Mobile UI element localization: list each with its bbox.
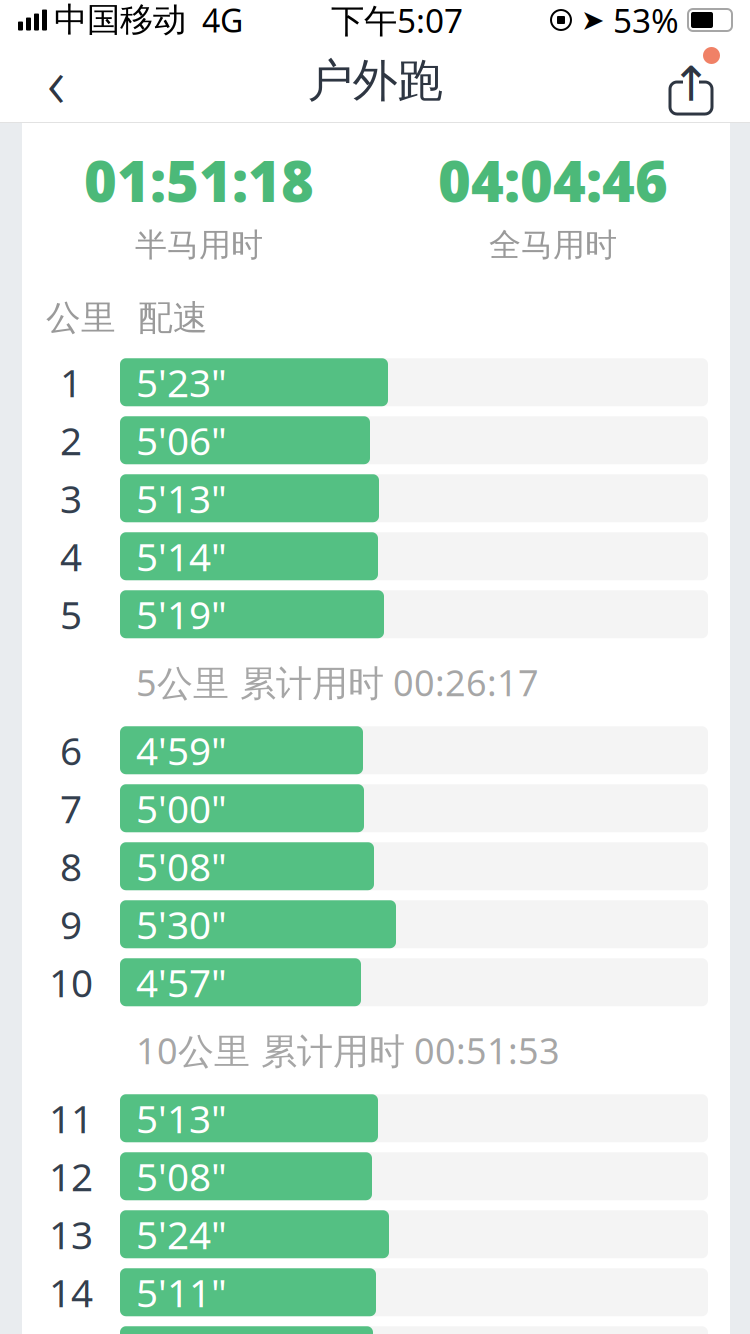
staticText: 5'06" [136,415,227,466]
staticText: 4'57" [136,957,227,1008]
staticText: 5'30" [136,899,227,950]
staticText: 1 [60,357,82,408]
staticText: 中国移动 [54,0,186,40]
staticText: 5'14" [136,531,227,582]
staticText: 01:51:18 [84,143,314,217]
staticText: 8 [60,841,82,892]
staticText: 5'13" [136,473,227,524]
staticText: 5'08" [136,1325,227,1334]
staticText: 5'13" [136,1093,227,1144]
staticText: 5公里 累计用时 00:26:17 [136,658,539,706]
staticText: 户外跑 [307,53,442,109]
staticText: 4'59" [136,725,227,776]
staticText: 10公里 累计用时 00:51:53 [136,1026,560,1074]
staticText: 5'19" [136,589,227,640]
staticText: 04:04:46 [438,143,668,217]
staticText: 10 [49,957,93,1008]
staticText: 5'11" [136,1267,227,1318]
button[interactable]: Share [652,40,736,122]
staticText: 5'08" [136,841,227,892]
staticText: 4 [60,531,82,582]
staticText: 5'23" [136,357,227,408]
staticText: ➤ [581,4,604,36]
staticText: 13 [49,1209,93,1260]
staticText: 2 [60,415,82,466]
staticText: 下午5:07 [331,0,463,42]
staticText: 11 [49,1093,93,1144]
staticText: 公里 [46,297,116,339]
staticText: 5'24" [136,1209,227,1260]
staticText: 5 [60,589,82,640]
staticText: 配速 [138,297,208,339]
staticText: 半马用时 [135,225,263,265]
staticText: 全马用时 [489,225,617,265]
staticText: 12 [49,1151,93,1202]
staticText: 7 [60,783,82,834]
staticText: 6 [60,725,82,776]
staticText: 3 [60,473,82,524]
staticText: ↑ [671,57,711,111]
staticText: 9 [60,899,82,950]
staticText: 14 [49,1267,93,1318]
staticText: 4G [202,0,243,41]
button[interactable]: Back [14,40,98,122]
staticText: ‹ [47,35,65,127]
staticText: 5'08" [136,1151,227,1202]
staticText: 53% [613,0,679,42]
staticText: 5'00" [136,783,227,834]
